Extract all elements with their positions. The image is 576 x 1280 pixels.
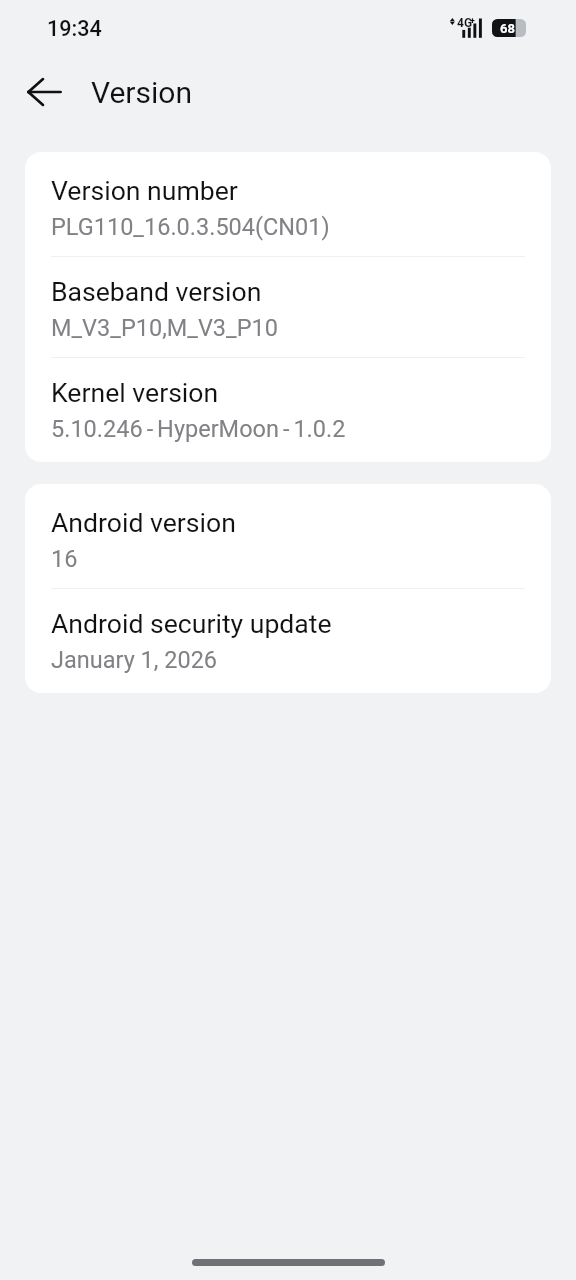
- staticText: Android version: [51, 507, 236, 538]
- staticText: +: [470, 16, 475, 27]
- staticText: Android security update: [51, 608, 332, 639]
- staticText: January 1, 2026: [51, 646, 218, 674]
- button[interactable]: Baseband version: [25, 257, 551, 357]
- staticText: 5.10.246 - HyperMoon - 1.0.2: [51, 415, 346, 443]
- staticText: 68: [500, 21, 515, 36]
- staticText: Kernel version: [51, 377, 219, 408]
- staticText: 4G: [457, 16, 473, 30]
- staticText: PLG110_16.0.3.504(CN01): [51, 213, 330, 241]
- staticText: Version: [91, 75, 192, 110]
- button[interactable]: Android version: [25, 488, 551, 588]
- button[interactable]: Back: [18, 66, 70, 118]
- button[interactable]: Android security update: [25, 589, 551, 689]
- staticText: 16: [51, 545, 78, 573]
- button[interactable]: Version number: [25, 156, 551, 256]
- staticText: Baseband version: [51, 276, 262, 307]
- staticText: M_V3_P10,M_V3_P10: [51, 314, 278, 342]
- staticText: Version number: [51, 175, 238, 206]
- button[interactable]: Kernel version: [25, 358, 551, 458]
- staticText: 19:34: [47, 16, 102, 41]
